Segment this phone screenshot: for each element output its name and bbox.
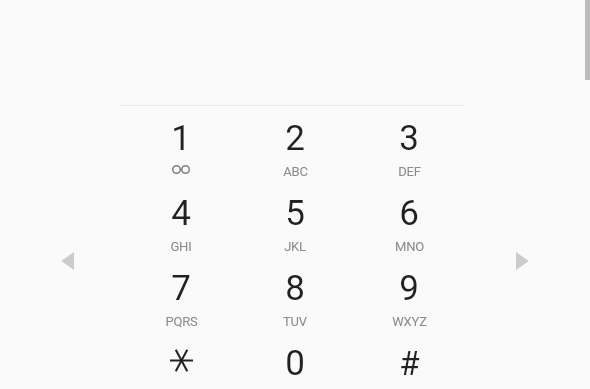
staticText: 5 xyxy=(285,193,305,234)
staticText: 4 xyxy=(171,193,191,234)
staticText: MNO xyxy=(395,239,424,254)
staticText: PQRS xyxy=(165,314,198,329)
button[interactable]: 9 WXYZ xyxy=(352,255,466,330)
button[interactable]: 2 ABC xyxy=(238,105,352,180)
button[interactable]: 6 MNO xyxy=(352,180,466,255)
staticText: ABC xyxy=(283,164,308,179)
button[interactable]: 3 DEF xyxy=(352,105,466,180)
button[interactable]: 8 TUV xyxy=(238,255,352,330)
staticText: DEF xyxy=(398,164,421,179)
staticText: WXYZ xyxy=(392,314,427,329)
button[interactable]: 5 JKL xyxy=(238,180,352,255)
staticText: GHI xyxy=(170,239,192,254)
staticText: 0 xyxy=(285,343,305,384)
button[interactable]: 0 xyxy=(238,330,352,389)
button[interactable]: # xyxy=(352,330,466,389)
staticText: JKL xyxy=(284,239,306,254)
staticText: 7 xyxy=(171,268,191,309)
staticText: 9 xyxy=(399,268,419,309)
staticText: 1 xyxy=(171,118,191,159)
button[interactable]: Next page xyxy=(510,249,534,273)
staticText: TUV xyxy=(283,314,307,329)
button[interactable]: Previous page xyxy=(56,249,80,273)
button[interactable]: 7 PQRS xyxy=(124,255,238,330)
staticText: # xyxy=(399,344,420,383)
button[interactable]: star xyxy=(124,330,238,389)
button[interactable]: 4 GHI xyxy=(124,180,238,255)
staticText: 2 xyxy=(285,118,305,159)
button[interactable]: 1 voicemail xyxy=(124,105,238,180)
staticText: 3 xyxy=(399,118,419,159)
staticText: 8 xyxy=(285,268,305,309)
staticText: 6 xyxy=(399,193,419,234)
